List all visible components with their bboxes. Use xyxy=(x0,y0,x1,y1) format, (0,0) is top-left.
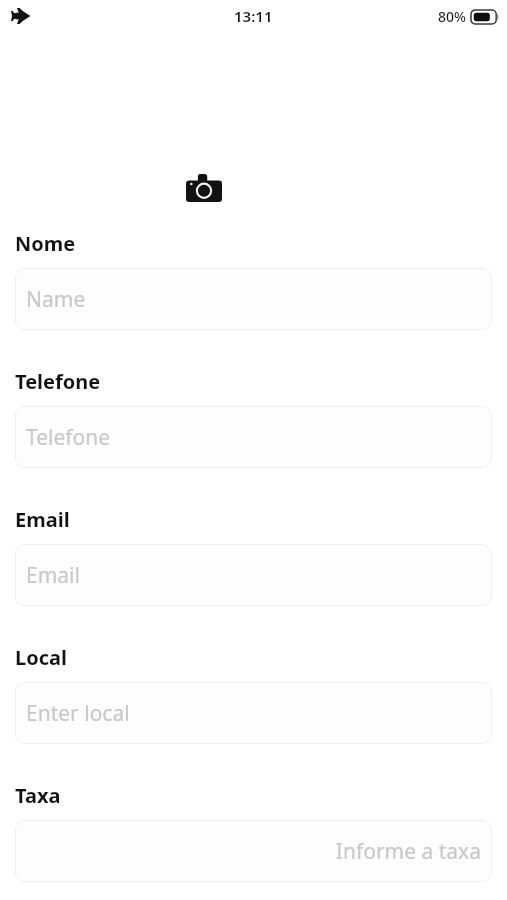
button[interactable]: Telefone xyxy=(15,406,492,468)
button[interactable]: Take photo xyxy=(184,172,224,204)
staticText: Telefone xyxy=(15,368,101,395)
staticText: Email xyxy=(26,561,80,590)
staticText: Name xyxy=(26,285,86,314)
staticText: Local xyxy=(15,644,67,671)
staticText: Nome xyxy=(15,230,76,257)
button[interactable]: Email xyxy=(15,544,492,606)
staticText: 80% xyxy=(438,7,466,26)
button[interactable]: Name xyxy=(15,268,492,330)
staticText: Email xyxy=(15,506,70,533)
button[interactable]: Enter local xyxy=(15,682,492,744)
staticText: Taxa xyxy=(15,782,61,809)
staticText: 13:11 xyxy=(234,6,273,26)
staticText: Informe a taxa xyxy=(335,837,481,866)
button[interactable]: Informe a taxa xyxy=(15,820,492,882)
staticText: Enter local xyxy=(26,699,130,728)
staticText: Telefone xyxy=(26,423,111,452)
other: Airplane mode xyxy=(9,4,33,28)
